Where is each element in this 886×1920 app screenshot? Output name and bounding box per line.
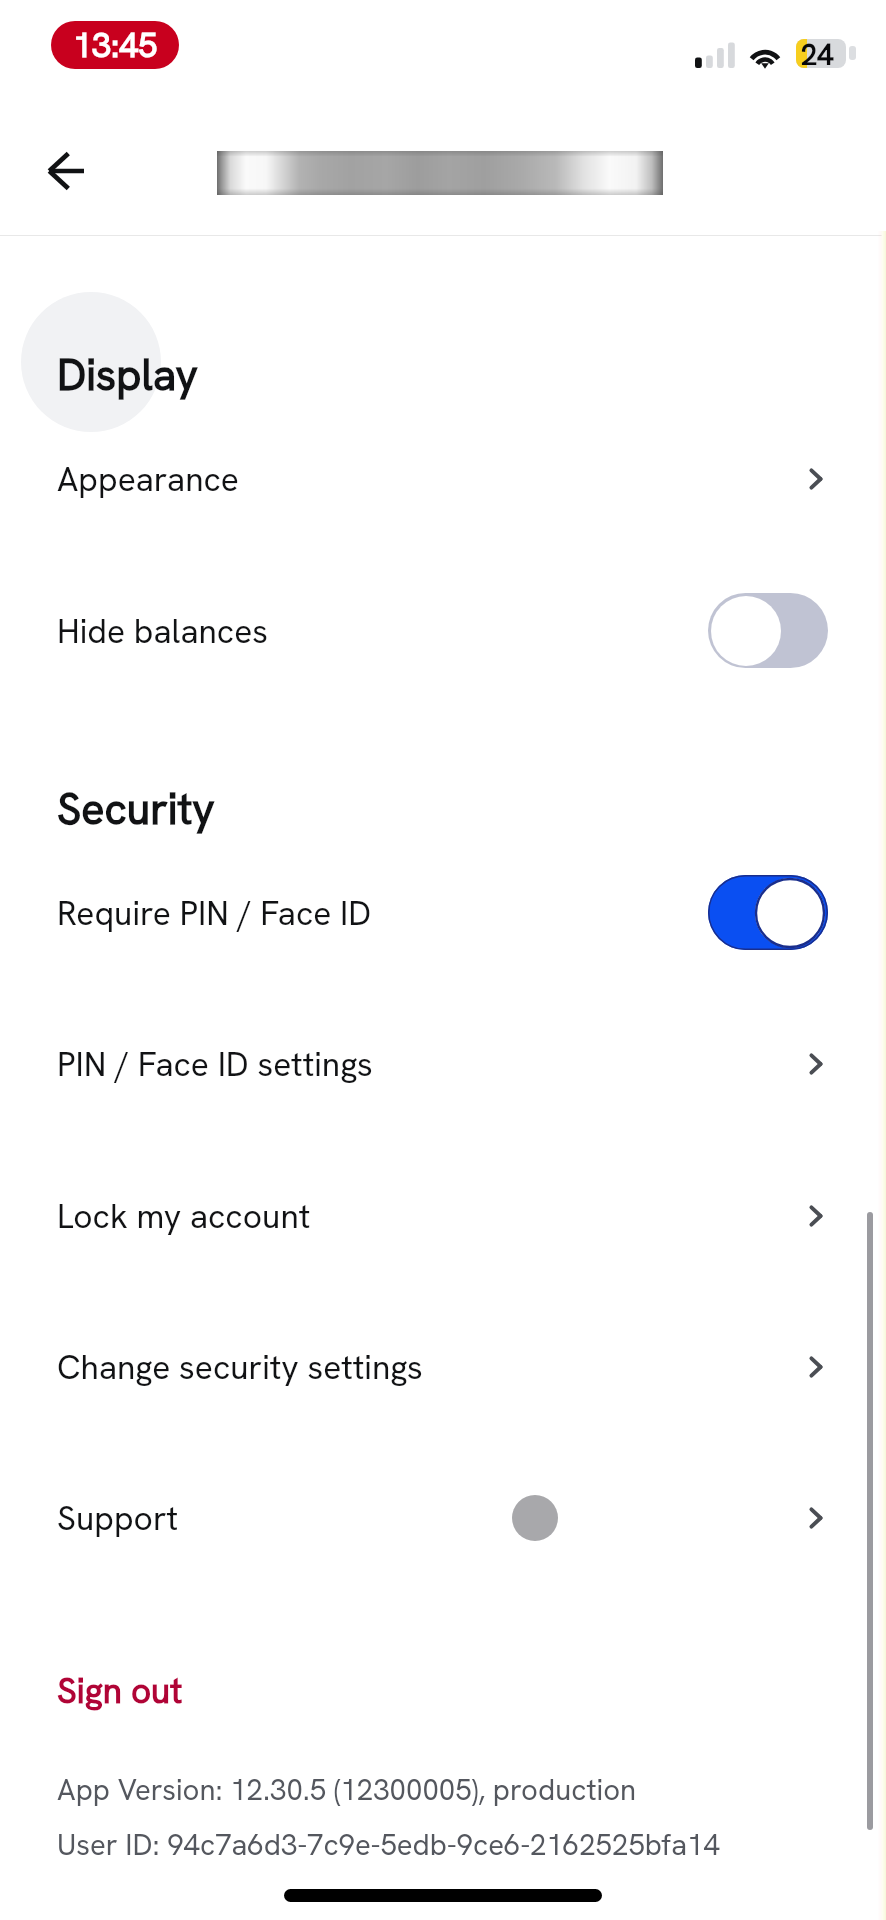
staticText: App Version: 12.30.5 (12300005), product… xyxy=(57,1771,637,1809)
button[interactable]: Support xyxy=(0,1442,886,1593)
staticText: Sign out xyxy=(57,1668,183,1714)
staticText: Hide balances xyxy=(57,609,268,653)
staticText: Change security settings xyxy=(57,1345,423,1389)
button[interactable]: Switch on xyxy=(708,875,828,950)
button[interactable]: Switch off xyxy=(708,593,828,668)
button[interactable]: Require PIN / Face ID xyxy=(0,837,886,988)
staticText: Appearance xyxy=(57,457,239,501)
button[interactable]: Change security settings xyxy=(0,1291,886,1442)
staticText: User ID: 94c7a6d3-7c9e-5edb-9ce6-2162525… xyxy=(57,1826,720,1864)
staticText: Require PIN / Face ID xyxy=(57,891,372,935)
button[interactable]: Lock my account xyxy=(0,1140,886,1291)
staticText: Support xyxy=(57,1496,179,1540)
staticText: 13:45 xyxy=(73,23,158,67)
staticText: Security xyxy=(57,781,215,837)
button[interactable]: PIN / Face ID settings xyxy=(0,988,886,1139)
staticText: Display xyxy=(57,347,198,403)
button[interactable]: Sign out xyxy=(49,1662,223,1720)
button[interactable]: Back xyxy=(30,135,102,207)
staticText: PIN / Face ID settings xyxy=(57,1042,373,1086)
staticText: Lock my account xyxy=(57,1194,311,1238)
staticText: 24 xyxy=(801,39,834,65)
button[interactable]: Hide balances xyxy=(0,555,886,706)
button[interactable]: Appearance xyxy=(0,403,886,554)
